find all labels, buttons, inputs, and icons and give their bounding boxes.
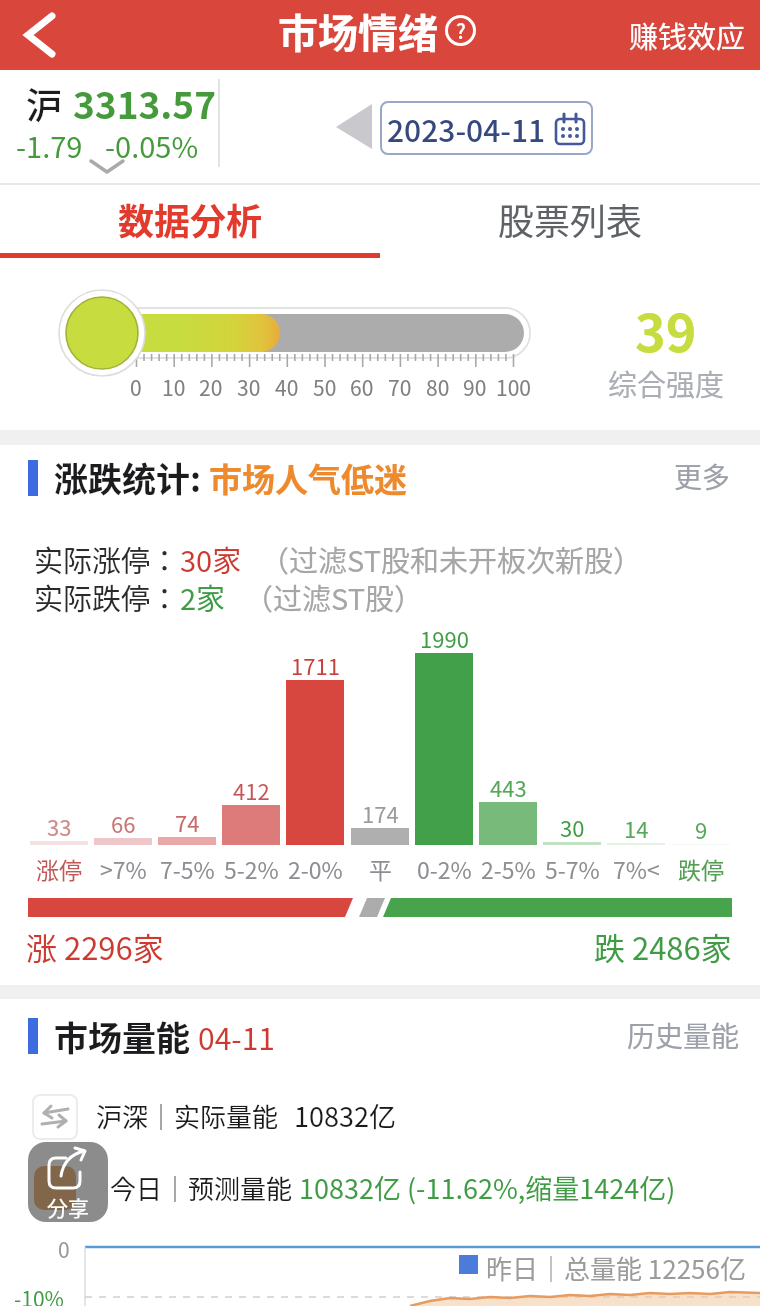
button[interactable]: 数据分析	[0, 185, 380, 253]
staticText: >7%	[100, 852, 147, 885]
staticText: 0	[130, 372, 142, 402]
button[interactable]: ?	[445, 15, 476, 46]
staticText: 50	[313, 372, 337, 402]
staticText: 2-0%	[288, 852, 343, 885]
staticText: -1.79	[16, 124, 83, 166]
staticText: 沪	[26, 77, 63, 129]
staticText: 20	[199, 372, 223, 402]
staticText: 分享	[47, 1192, 89, 1222]
staticText: -0.05%	[105, 124, 199, 166]
staticText: 14	[624, 812, 649, 844]
staticText: 2-5%	[481, 852, 536, 885]
staticText: 0-2%	[417, 852, 472, 885]
staticText: 443	[490, 771, 527, 803]
staticText: 更多	[674, 456, 731, 497]
staticText: 80	[426, 372, 450, 402]
staticText: 涨停	[36, 852, 82, 885]
staticText: 30家	[180, 538, 242, 580]
staticText: 39	[635, 292, 697, 367]
staticText: 今日｜预测量能	[110, 1169, 293, 1207]
staticText: 赚钱效应	[629, 14, 746, 56]
staticText: 历史量能	[627, 1015, 740, 1056]
staticText: 30	[560, 811, 585, 843]
staticText: 10	[162, 372, 186, 402]
staticText: ?	[456, 16, 466, 45]
staticText: 7-5%	[160, 852, 215, 885]
button[interactable]	[32, 1094, 78, 1140]
staticText: 5-2%	[224, 852, 279, 885]
staticText: （过滤ST股）	[244, 576, 424, 618]
staticText: 实际跌停：	[34, 576, 180, 618]
staticText: 412	[233, 774, 270, 806]
staticText: 90	[463, 372, 487, 402]
staticText: 04-11	[198, 1015, 276, 1058]
staticText: -10%	[14, 1283, 64, 1306]
staticText: 66	[111, 807, 136, 839]
staticText: 平	[369, 852, 392, 885]
button[interactable]: 赚钱效应	[624, 14, 750, 56]
staticText: 数据分析	[118, 193, 263, 245]
staticText: 174	[362, 797, 399, 829]
staticText: 市场人气低迷	[209, 454, 407, 502]
staticText: 昨日｜总量能 12256亿	[486, 1249, 746, 1287]
staticText: 涨跌统计:	[54, 453, 209, 502]
staticText: 市场量能	[54, 1012, 198, 1061]
staticText: 2家	[180, 576, 226, 618]
staticText: 9	[695, 813, 708, 845]
staticText: 60	[350, 372, 374, 402]
staticText: 100	[496, 372, 531, 402]
staticText: 40	[275, 372, 299, 402]
button[interactable]	[28, 1142, 108, 1222]
button[interactable]: 更多	[660, 455, 744, 497]
staticText: 市场情绪	[278, 2, 438, 60]
button[interactable]	[330, 98, 378, 156]
staticText: 1990	[420, 622, 469, 654]
staticText: 30	[237, 372, 261, 402]
staticText: 跌 2486家	[594, 924, 732, 969]
staticText: 沪深｜实际量能	[96, 1097, 279, 1135]
staticText: 33	[47, 810, 72, 842]
button[interactable]	[14, 5, 70, 65]
staticText: 实际涨停：	[34, 538, 180, 580]
staticText: 74	[175, 806, 200, 838]
staticText: （过滤ST股和未开板次新股）	[260, 538, 643, 580]
staticText: 2023-04-11	[387, 107, 546, 150]
button[interactable]: 历史量能	[622, 1014, 744, 1056]
staticText: 70	[388, 372, 412, 402]
staticText: 10832亿	[294, 1096, 396, 1135]
staticText: 涨 2296家	[26, 924, 164, 969]
staticText: 5-7%	[545, 852, 600, 885]
staticText: 10832亿 (-11.62%,缩量1424亿)	[299, 1168, 676, 1207]
staticText: 跌停	[678, 852, 724, 885]
staticText: 3313.57	[73, 76, 217, 130]
staticText: 7%<	[613, 852, 660, 885]
staticText: 综合强度	[608, 362, 725, 404]
staticText: 股票列表	[498, 193, 643, 245]
button[interactable]: 2023-04-11	[380, 101, 593, 155]
button[interactable]: 股票列表	[380, 185, 760, 253]
staticText: 0	[58, 1234, 70, 1264]
staticText: 1711	[291, 649, 340, 681]
